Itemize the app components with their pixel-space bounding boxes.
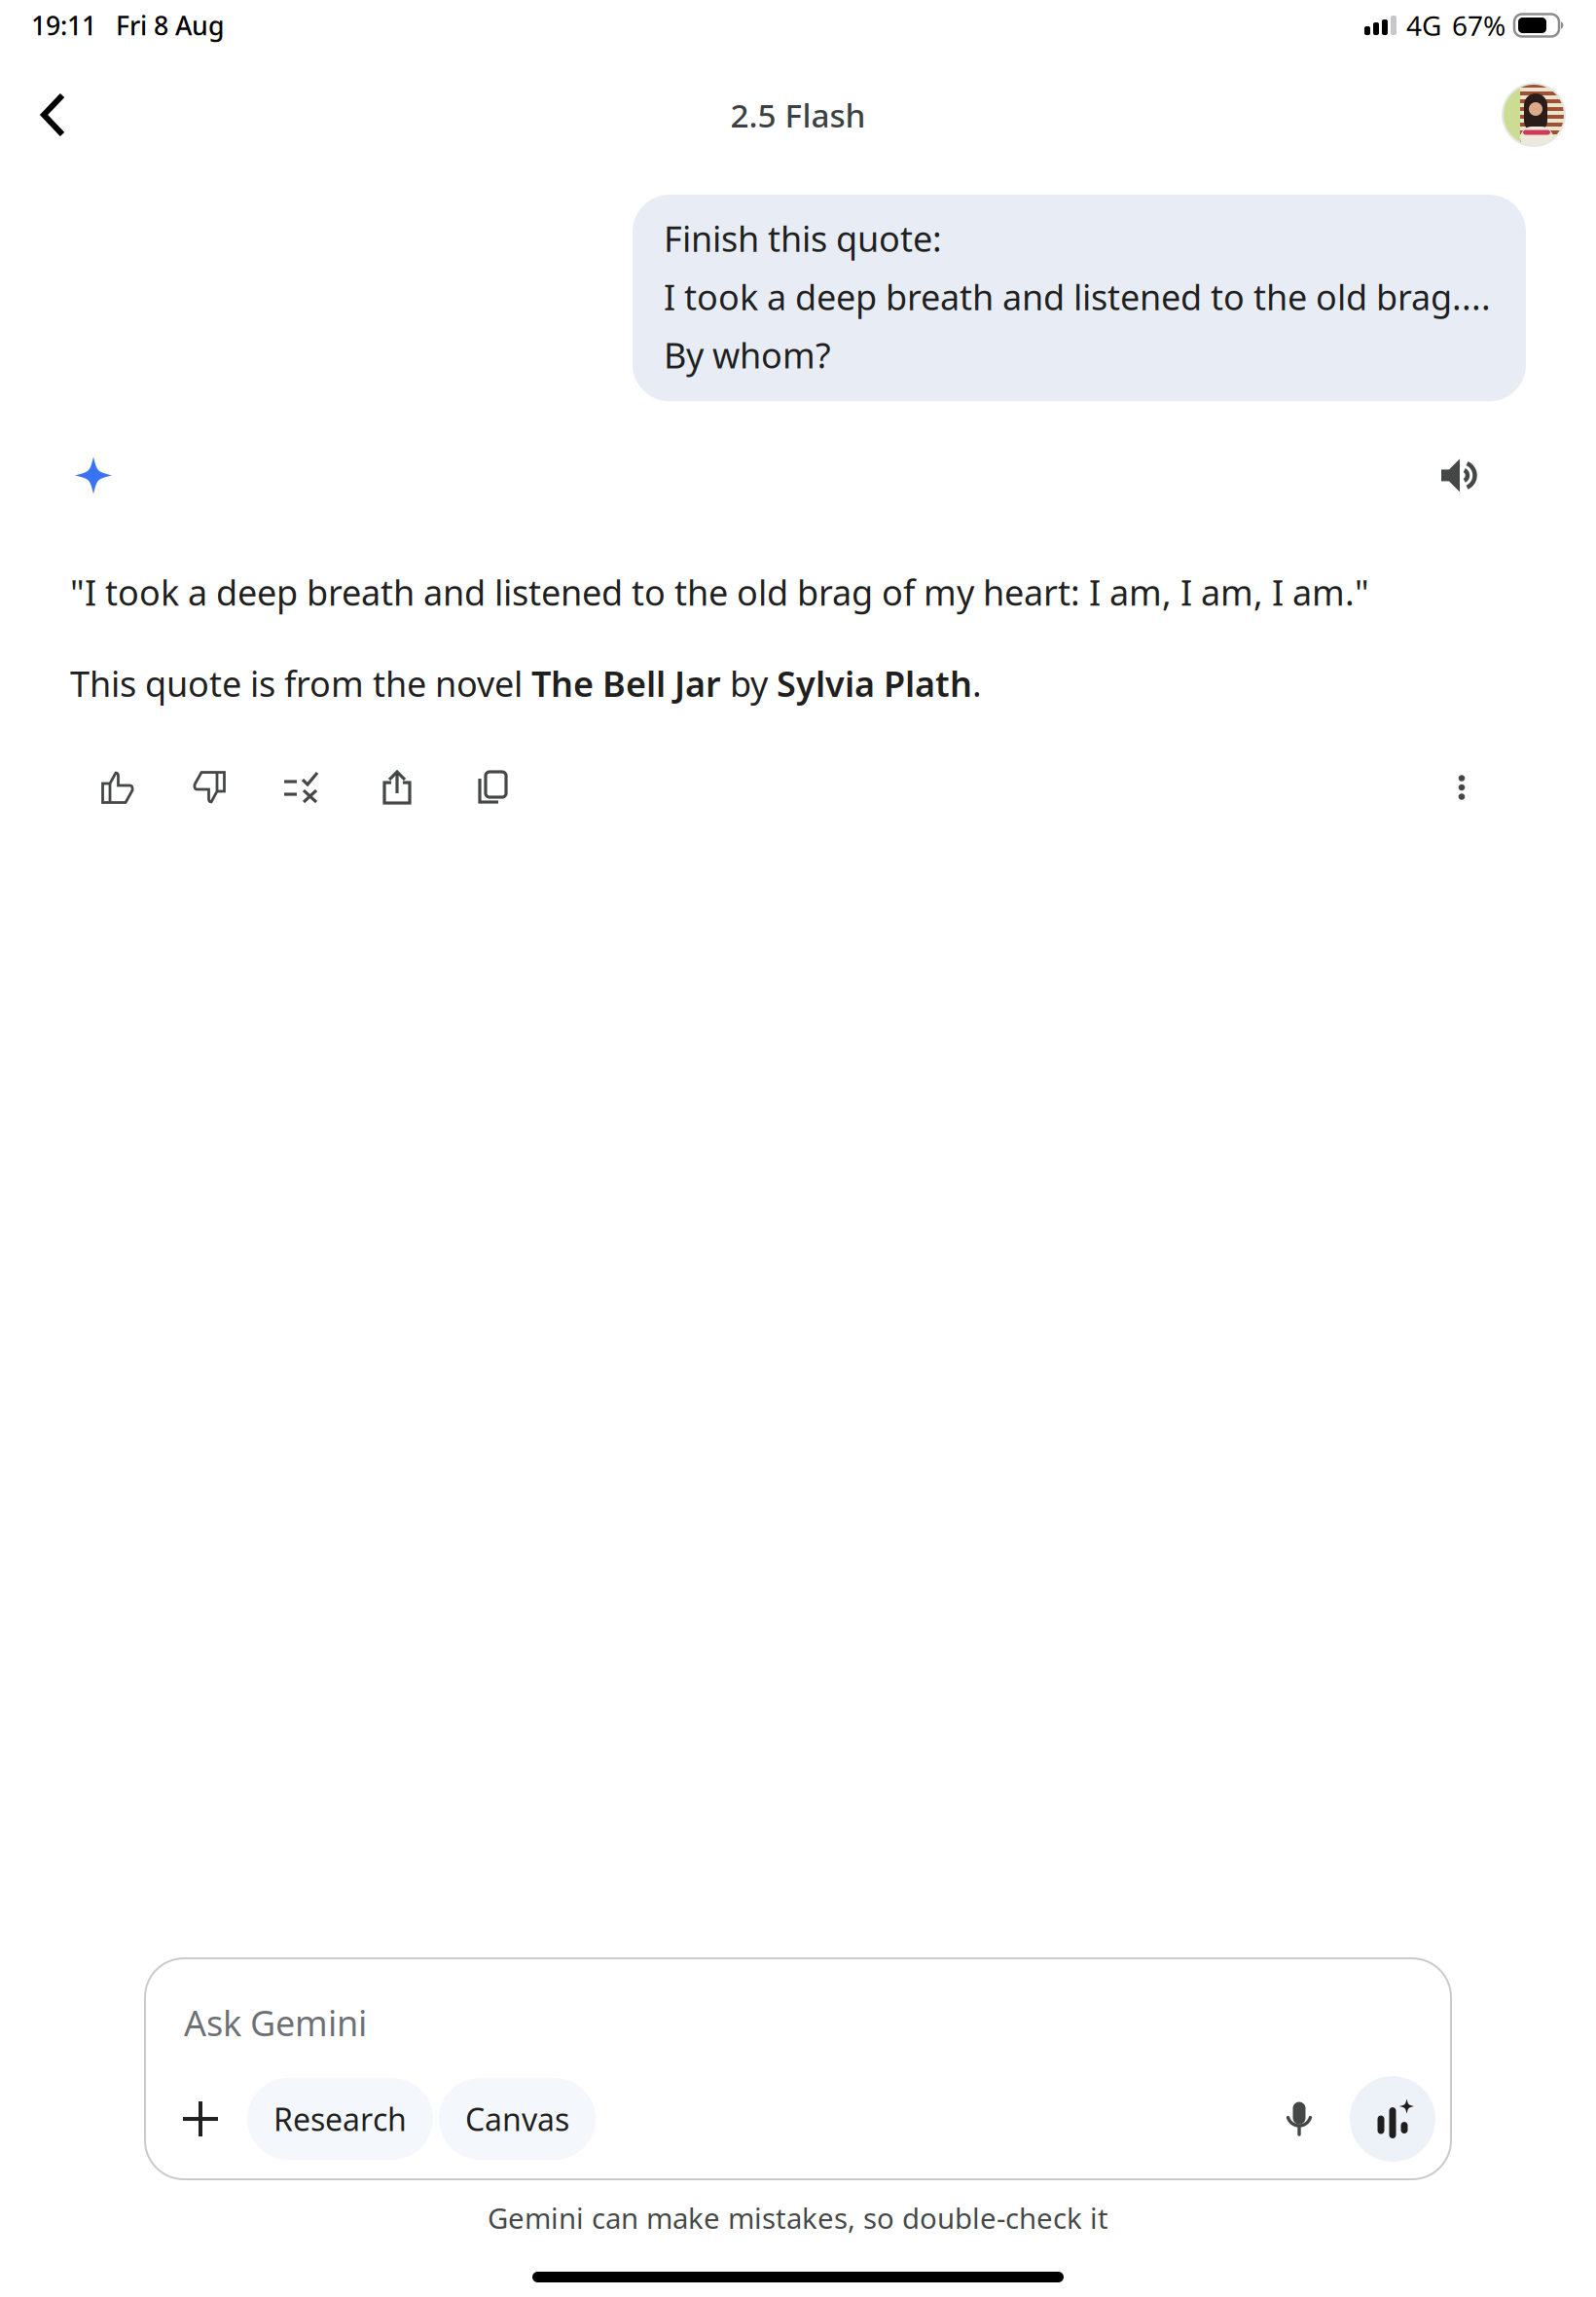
staticText: "I took a deep breath and listened to th…: [70, 569, 1369, 615]
staticText: Gemini can make mistakes, so double-chec…: [488, 2199, 1108, 2237]
button[interactable]: Add files: [165, 2078, 236, 2160]
button[interactable]: Back: [11, 72, 96, 158]
staticText: .: [972, 660, 982, 707]
staticText: By whom?: [664, 332, 831, 378]
button[interactable]: Copy: [463, 760, 522, 815]
button[interactable]: Research: [247, 2078, 433, 2160]
staticText: Research: [273, 2098, 407, 2140]
staticText: Ask Gemini: [184, 1999, 367, 2046]
staticText: This quote is from the novel: [70, 660, 531, 707]
staticText: 19:11: [31, 8, 96, 43]
staticText: 2.5 Flash: [730, 93, 866, 136]
staticText: Fri 8 Aug: [116, 8, 225, 43]
button[interactable]: Account: [1491, 72, 1577, 158]
button[interactable]: Share: [368, 760, 426, 815]
staticText: Finish this quote:: [664, 215, 942, 262]
staticText: 67%: [1452, 7, 1505, 43]
button[interactable]: Good response: [89, 760, 147, 815]
staticText: Canvas: [465, 2098, 569, 2140]
button[interactable]: Bad response: [180, 760, 238, 815]
button[interactable]: Gemini Live: [1350, 2076, 1435, 2162]
staticText: Sylvia Plath: [777, 660, 972, 707]
staticText: by: [721, 660, 777, 707]
button[interactable]: Canvas: [439, 2078, 596, 2160]
staticText: 4G: [1406, 7, 1441, 43]
button[interactable]: Voice input: [1270, 2090, 1328, 2148]
button[interactable]: More options: [1433, 760, 1491, 815]
staticText: I took a deep breath and listened to the…: [664, 273, 1491, 320]
staticText: The Bell Jar: [531, 660, 721, 707]
button[interactable]: Double-check response: [272, 760, 330, 815]
button[interactable]: Listen: [1430, 446, 1488, 505]
